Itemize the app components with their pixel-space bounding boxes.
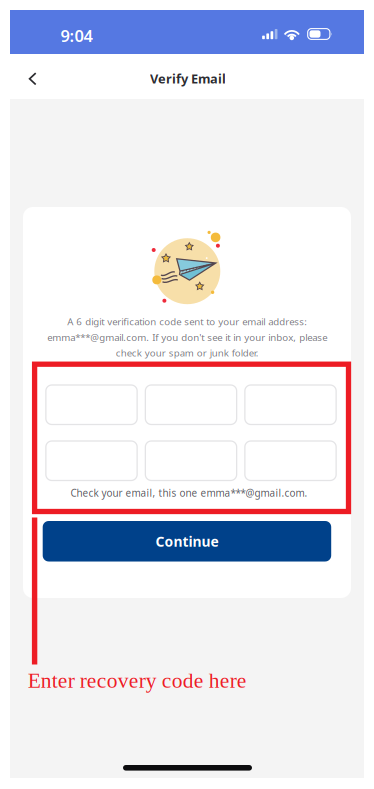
staticText: A 6 digit verification code sent to your… (47, 315, 327, 359)
button[interactable]: Back (10, 54, 46, 99)
staticText: Verify Email (150, 70, 226, 87)
staticText: Continue (155, 532, 218, 551)
button[interactable]: Continue (43, 521, 331, 561)
staticText: Check your email, this one emma***@gmail… (70, 486, 307, 500)
staticText: Enter recovery code here (28, 669, 247, 692)
staticText: 9:04 (60, 24, 92, 47)
